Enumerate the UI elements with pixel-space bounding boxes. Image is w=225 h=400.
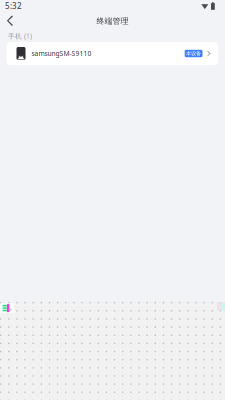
staticText: 终端管理 xyxy=(96,16,128,26)
button[interactable]: Back xyxy=(0,12,22,30)
staticText: 5:32 xyxy=(5,1,22,11)
staticText: 本设备 xyxy=(186,50,201,57)
staticText: 手机 (1) xyxy=(8,32,32,40)
staticText: samsungSM-S9110 xyxy=(31,49,91,58)
button[interactable]: samsungSM-S9110 xyxy=(6,42,218,65)
